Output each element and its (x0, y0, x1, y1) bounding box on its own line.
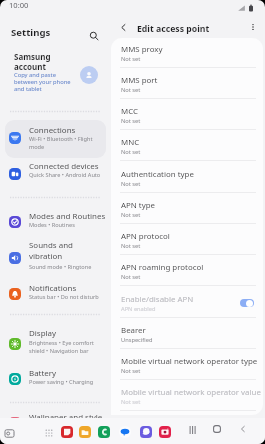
button[interactable]: Back (236, 422, 250, 436)
staticText: Brightness • Eye comfort (29, 339, 94, 347)
button[interactable] (5, 208, 106, 236)
button[interactable]: Mobile virtual network operator type (111, 348, 263, 379)
button[interactable]: Back (114, 18, 132, 36)
button[interactable]: Authentication type (111, 161, 263, 192)
staticText: shield • Navigation bar (29, 347, 89, 355)
button[interactable]: App 5 (140, 426, 152, 438)
staticText: Not set (121, 242, 141, 250)
button[interactable]: Mobile virtual network operator value (111, 379, 263, 410)
staticText: Wallpaper and style (29, 412, 103, 423)
staticText: APN type (121, 200, 156, 211)
button[interactable]: APN protocol (111, 223, 263, 254)
staticText: vibration (29, 251, 63, 262)
button[interactable]: App 1 (61, 426, 73, 438)
button[interactable]: App 3 (98, 426, 110, 438)
button[interactable]: Task switcher (3, 427, 15, 439)
button[interactable]: App 4 (119, 426, 131, 438)
button[interactable]: Enable/disable APN (111, 286, 263, 317)
button[interactable]: Apps (44, 428, 54, 438)
button[interactable]: Bearer (111, 317, 263, 348)
staticText: Settings (11, 26, 51, 39)
staticText: Connected devices (29, 161, 99, 172)
staticText: APN enabled (121, 305, 156, 313)
staticText: Not set (121, 148, 141, 156)
button[interactable]: App 2 (79, 426, 91, 438)
button[interactable]: Samsung (5, 50, 106, 95)
staticText: Not set (121, 117, 141, 125)
button[interactable]: Recents (186, 423, 200, 437)
staticText: Status bar • Do not disturb (29, 293, 99, 301)
staticText: Mobile virtual network operator type (121, 356, 258, 367)
staticText: APN protocol (121, 231, 170, 242)
staticText: Notifications (29, 283, 77, 294)
staticText: Not set (121, 273, 141, 281)
staticText: Not set (121, 86, 141, 94)
button[interactable]: More options (244, 18, 262, 36)
staticText: Not set (121, 55, 141, 63)
staticText: Not set (121, 398, 141, 406)
button[interactable] (5, 283, 106, 311)
button[interactable]: Home (210, 422, 224, 436)
staticText: Not set (121, 211, 141, 219)
staticText: Modes • Routines (29, 221, 75, 229)
staticText: Sound mode • Ringtone (29, 263, 92, 271)
staticText: Not set (121, 180, 141, 188)
staticText: 10:00 (9, 0, 29, 10)
staticText: and tablet (14, 85, 42, 93)
staticText: Wi-Fi • Bluetooth • Flight (29, 135, 93, 143)
staticText: mode (29, 143, 45, 151)
staticText: Copy and paste (14, 71, 56, 79)
staticText: Sounds and (29, 240, 73, 251)
staticText: MNC (121, 137, 140, 148)
button[interactable]: APN type (111, 192, 263, 223)
button[interactable]: MMS port (111, 67, 263, 98)
button[interactable] (5, 160, 106, 190)
staticText: between your phone (14, 78, 71, 86)
staticText: Modes and Routines (29, 211, 106, 222)
staticText: Unspecified (121, 336, 153, 344)
staticText: Bearer (121, 325, 146, 336)
staticText: MCC (121, 106, 138, 117)
button[interactable]: MNC (111, 129, 263, 160)
staticText: Quick Share • Android Auto (29, 171, 101, 179)
staticText: MMS port (121, 75, 158, 86)
staticText: Connections (29, 125, 76, 136)
button[interactable]: APN roaming protocol (111, 254, 263, 285)
staticText: Battery (29, 368, 57, 379)
button[interactable]: Search (85, 27, 103, 45)
staticText: Power saving • Charging (29, 378, 94, 386)
staticText: APN roaming protocol (121, 262, 204, 273)
staticText: Samsung (14, 51, 51, 62)
button[interactable]: MMS proxy (111, 38, 263, 67)
button[interactable] (5, 328, 106, 362)
staticText: Authentication type (121, 169, 194, 180)
staticText: Display (29, 328, 57, 339)
staticText: Enable/disable APN (121, 294, 194, 305)
staticText: Edit access point (137, 23, 210, 35)
button[interactable] (5, 120, 106, 158)
staticText: Not set (121, 367, 141, 375)
button[interactable] (5, 367, 106, 395)
staticText: MMS proxy (121, 44, 163, 55)
staticText: account (14, 61, 46, 72)
button[interactable]: MCC (111, 98, 263, 129)
staticText: Mobile virtual network operator value (121, 387, 261, 398)
button[interactable] (5, 240, 106, 275)
button[interactable]: App 6 (159, 426, 171, 438)
